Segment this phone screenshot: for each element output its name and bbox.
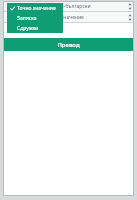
button[interactable]: Английско-български xyxy=(3,1,134,12)
other: Open dropdown xyxy=(126,12,134,23)
staticText: Точно значение xyxy=(45,14,84,21)
other: Open dropdown xyxy=(126,1,134,12)
staticText: Точно значение xyxy=(17,5,56,12)
staticText: Английско-български xyxy=(38,3,91,10)
button[interactable]: Selected xyxy=(7,3,63,13)
button[interactable]: Точно значение xyxy=(3,12,134,23)
other: Selected xyxy=(10,6,15,11)
staticText: Записка xyxy=(17,15,37,22)
staticText: Превод xyxy=(57,41,80,49)
button[interactable]: Сдружки xyxy=(7,23,63,33)
button[interactable]: Превод xyxy=(4,38,133,51)
staticText: Сдружки xyxy=(17,25,39,32)
button[interactable]: Записка xyxy=(7,13,63,23)
